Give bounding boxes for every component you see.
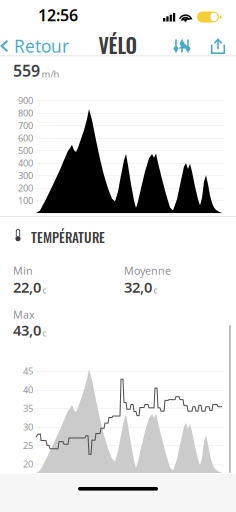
staticText: 45 — [23, 365, 33, 377]
staticText: 900 — [18, 94, 33, 107]
staticText: TEMPÉRATURE — [31, 227, 105, 247]
staticText: 100 — [18, 194, 33, 207]
staticText: c — [153, 285, 157, 296]
staticText: 32,0 — [124, 277, 152, 297]
staticText: 43,0 — [13, 320, 41, 340]
staticText: Max — [13, 307, 35, 322]
staticText: c — [42, 285, 46, 296]
staticText: 800 — [18, 107, 33, 119]
staticText: 200 — [18, 182, 33, 194]
staticText: 30 — [23, 421, 33, 433]
staticText: Moyenne — [124, 263, 171, 278]
staticText: 600 — [18, 132, 33, 144]
staticText: 500 — [18, 144, 33, 157]
staticText: 400 — [18, 157, 33, 169]
button[interactable]: Partager — [210, 38, 225, 54]
staticText: 12:56 — [38, 4, 78, 26]
staticText: 40 — [23, 383, 33, 396]
staticText: 25 — [23, 439, 33, 452]
staticText: 35 — [23, 402, 33, 414]
staticText: 20 — [23, 458, 33, 470]
staticText: 559 — [13, 60, 40, 81]
staticText: Min — [13, 263, 33, 278]
button[interactable]: Réglages — [174, 39, 190, 53]
staticText: m/h — [41, 68, 59, 80]
staticText: 22,0 — [13, 277, 41, 297]
staticText: Retour — [14, 34, 69, 57]
staticText: 700 — [18, 119, 33, 132]
staticText: 300 — [18, 169, 33, 182]
staticText: VÉLO — [98, 30, 137, 60]
staticText: c — [42, 328, 46, 339]
button[interactable]: Retour — [0, 34, 74, 57]
